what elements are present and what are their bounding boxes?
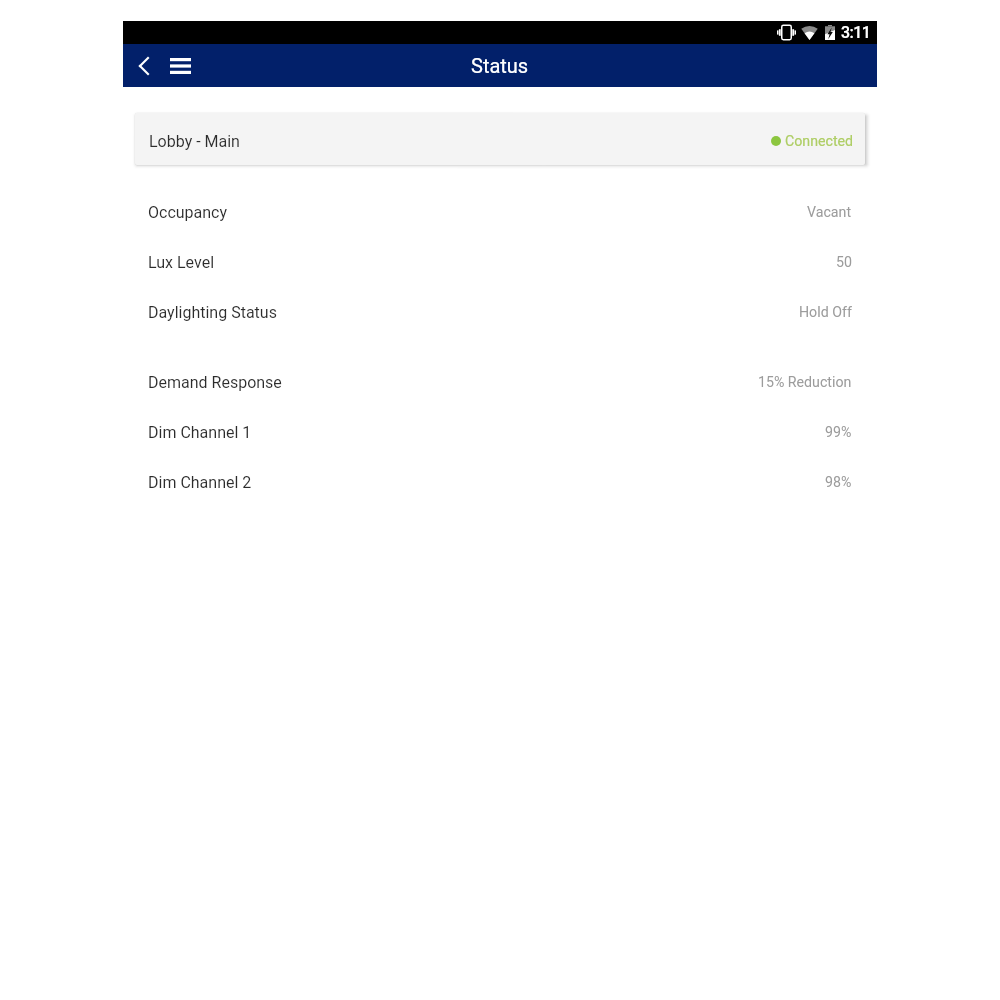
staticText: 3:11 [841, 23, 871, 42]
staticText: 98% [825, 474, 852, 491]
staticText: Hold Off [799, 304, 852, 321]
staticText: 15% Reduction [758, 374, 852, 391]
staticText: Lux Level [148, 253, 215, 272]
staticText: Occupancy [148, 203, 228, 222]
button[interactable]: Back [126, 44, 162, 87]
button[interactable]: Demand Response [123, 355, 877, 405]
button[interactable]: Lux Level [123, 235, 877, 285]
button[interactable]: Menu [162, 44, 199, 87]
button[interactable]: Daylighting Status [123, 285, 877, 335]
staticText: Vacant [807, 204, 852, 221]
button[interactable]: Dim Channel 2 [123, 455, 877, 505]
button[interactable]: Dim Channel 1 [123, 405, 877, 455]
button[interactable]: Lobby - Main [135, 113, 865, 165]
staticText: Lobby - Main [149, 132, 240, 151]
staticText: 99% [825, 424, 852, 441]
staticText: Dim Channel 2 [148, 473, 252, 492]
staticText: Connected [785, 133, 854, 150]
staticText: Daylighting Status [148, 303, 277, 322]
staticText: Dim Channel 1 [148, 423, 252, 442]
button[interactable]: Occupancy [123, 185, 877, 235]
staticText: Status [471, 54, 529, 77]
staticText: 50 [836, 254, 852, 271]
staticText: Demand Response [148, 373, 282, 392]
